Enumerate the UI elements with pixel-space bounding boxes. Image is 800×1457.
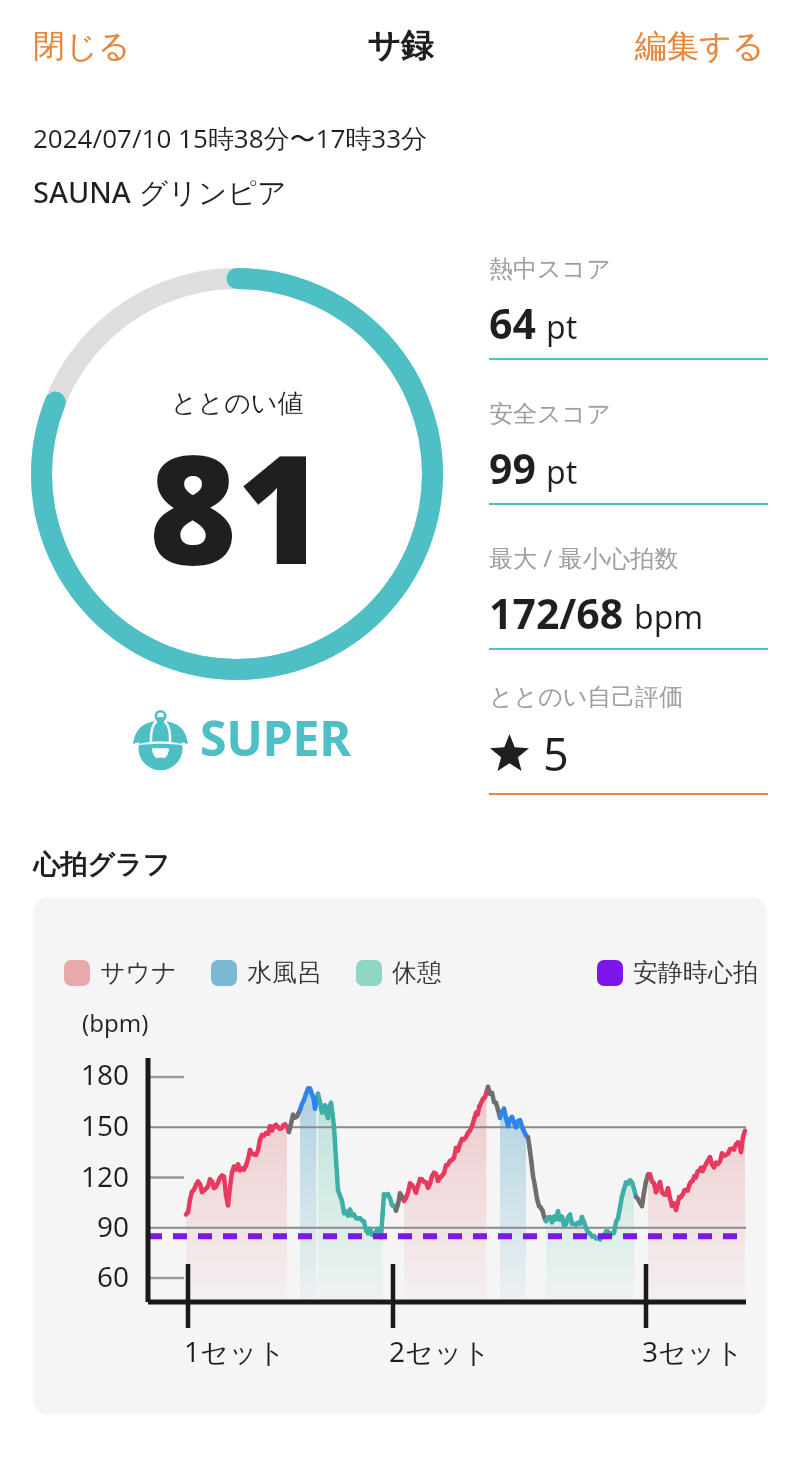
staticText: 2024/07/10 15時38分〜17時33分 — [33, 120, 428, 156]
staticText: bpm — [634, 595, 704, 639]
staticText: 150 — [81, 1106, 130, 1144]
staticText: 編集する — [635, 26, 765, 66]
staticText: サウナ — [100, 957, 177, 988]
staticText: SAUNA グリンピア — [33, 172, 287, 212]
staticText: 172/68 — [489, 585, 624, 641]
staticText: サ録 — [367, 25, 434, 67]
staticText: 90 — [97, 1207, 130, 1245]
staticText: 閉じる — [33, 26, 131, 66]
staticText: ととのい自己評価 — [489, 682, 684, 712]
staticText: pt — [546, 305, 578, 349]
staticText: 2セット — [389, 1332, 491, 1370]
button[interactable]: 閉じる — [0, 14, 149, 78]
staticText: (bpm) — [82, 1006, 149, 1039]
staticText: 3セット — [642, 1332, 744, 1370]
staticText: 99 — [489, 440, 536, 496]
staticText: 熱中スコア — [489, 254, 611, 284]
staticText: 最大 / 最小心拍数 — [489, 541, 679, 574]
staticText: 水風呂 — [247, 957, 322, 988]
staticText: 心拍グラフ — [33, 848, 170, 882]
staticText: 60 — [97, 1257, 130, 1295]
staticText: 64 — [489, 295, 536, 351]
staticText: 休憩 — [392, 957, 442, 988]
staticText: 1セット — [184, 1332, 286, 1370]
staticText: ととのい値 — [171, 387, 304, 420]
staticText: 5 — [543, 723, 569, 784]
staticText: SUPER — [200, 705, 351, 770]
staticText: 120 — [81, 1157, 130, 1195]
staticText: 安静時心拍 — [633, 957, 758, 988]
staticText: pt — [546, 450, 578, 494]
button[interactable]: 編集する — [617, 14, 800, 78]
staticText: 安全スコア — [489, 399, 611, 429]
staticText: 180 — [81, 1055, 130, 1093]
staticText: 81 — [149, 404, 325, 608]
